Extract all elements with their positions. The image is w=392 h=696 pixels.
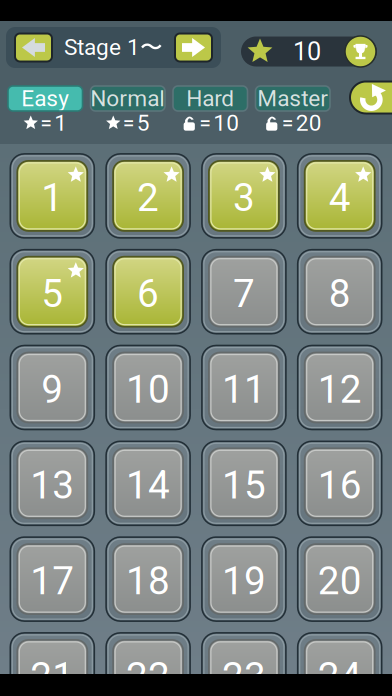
button[interactable]: Trophy progress, 10 stars <box>241 32 377 63</box>
button[interactable]: 21 <box>4 627 100 696</box>
staticText: Master <box>257 85 328 112</box>
staticText: 2 <box>137 175 159 220</box>
button[interactable]: 3 <box>196 148 292 244</box>
button[interactable]: Normal <box>86 86 169 133</box>
button[interactable]: 23 <box>196 627 292 696</box>
button[interactable]: 14 <box>100 435 196 531</box>
button[interactable]: 9 <box>4 340 100 435</box>
button[interactable]: 22 <box>100 627 196 696</box>
button[interactable]: 11 <box>196 340 292 435</box>
button[interactable]: 19 <box>196 531 292 627</box>
button[interactable]: 8 <box>292 244 388 340</box>
button[interactable]: 24 <box>292 627 388 696</box>
staticText: 23 <box>222 654 266 696</box>
staticText: 6 <box>137 271 159 316</box>
button[interactable]: 2 <box>100 148 196 244</box>
button[interactable]: Next stage <box>175 33 212 61</box>
staticText: 16 <box>318 463 362 508</box>
staticText: 7 <box>233 271 255 316</box>
staticText: = <box>123 110 135 135</box>
staticText: 8 <box>329 271 351 316</box>
button[interactable]: 15 <box>196 435 292 531</box>
staticText: Stage 1〜 <box>64 33 163 62</box>
staticText: 15 <box>222 463 266 508</box>
staticText: 10 <box>126 367 170 412</box>
staticText: 24 <box>318 654 362 696</box>
button[interactable]: 5 <box>4 244 100 340</box>
button[interactable]: 1 <box>4 148 100 244</box>
button[interactable]: 13 <box>4 435 100 531</box>
staticText: 5 <box>137 110 150 136</box>
staticText: 19 <box>222 558 266 604</box>
button[interactable]: 4 <box>292 148 388 244</box>
button[interactable]: 16 <box>292 435 388 531</box>
button[interactable]: 10 <box>100 340 196 435</box>
staticText: = <box>199 110 211 135</box>
button[interactable]: Master <box>251 86 334 133</box>
staticText: 1 <box>54 110 67 136</box>
staticText: 12 <box>318 367 362 412</box>
staticText: 11 <box>222 367 266 412</box>
staticText: 18 <box>126 558 170 604</box>
staticText: 5 <box>41 271 63 316</box>
staticText: 20 <box>318 558 362 604</box>
button[interactable]: 17 <box>4 531 100 627</box>
staticText: 20 <box>296 110 322 136</box>
staticText: Easy <box>21 85 69 112</box>
staticText: 9 <box>41 367 63 412</box>
staticText: = <box>40 110 52 135</box>
staticText: Hard <box>186 85 234 112</box>
button[interactable]: 18 <box>100 531 196 627</box>
button[interactable]: Previous stage <box>15 33 52 61</box>
staticText: 21 <box>30 654 74 696</box>
staticText: 22 <box>126 654 170 696</box>
staticText: 10 <box>293 37 321 66</box>
staticText: 3 <box>233 175 255 220</box>
button[interactable]: Hard <box>169 86 251 133</box>
staticText: 1 <box>41 175 63 220</box>
staticText: 17 <box>30 558 74 604</box>
staticText: 13 <box>30 463 74 508</box>
button[interactable]: 7 <box>196 244 292 340</box>
staticText: Normal <box>90 85 165 112</box>
staticText: = <box>282 110 294 135</box>
staticText: 4 <box>329 175 351 220</box>
button[interactable]: 6 <box>100 244 196 340</box>
button[interactable]: 12 <box>292 340 388 435</box>
staticText: 10 <box>213 110 239 136</box>
button[interactable]: Easy <box>4 86 86 133</box>
staticText: 14 <box>126 463 170 508</box>
button[interactable]: 20 <box>292 531 388 627</box>
button[interactable]: Reset progress <box>350 81 392 113</box>
